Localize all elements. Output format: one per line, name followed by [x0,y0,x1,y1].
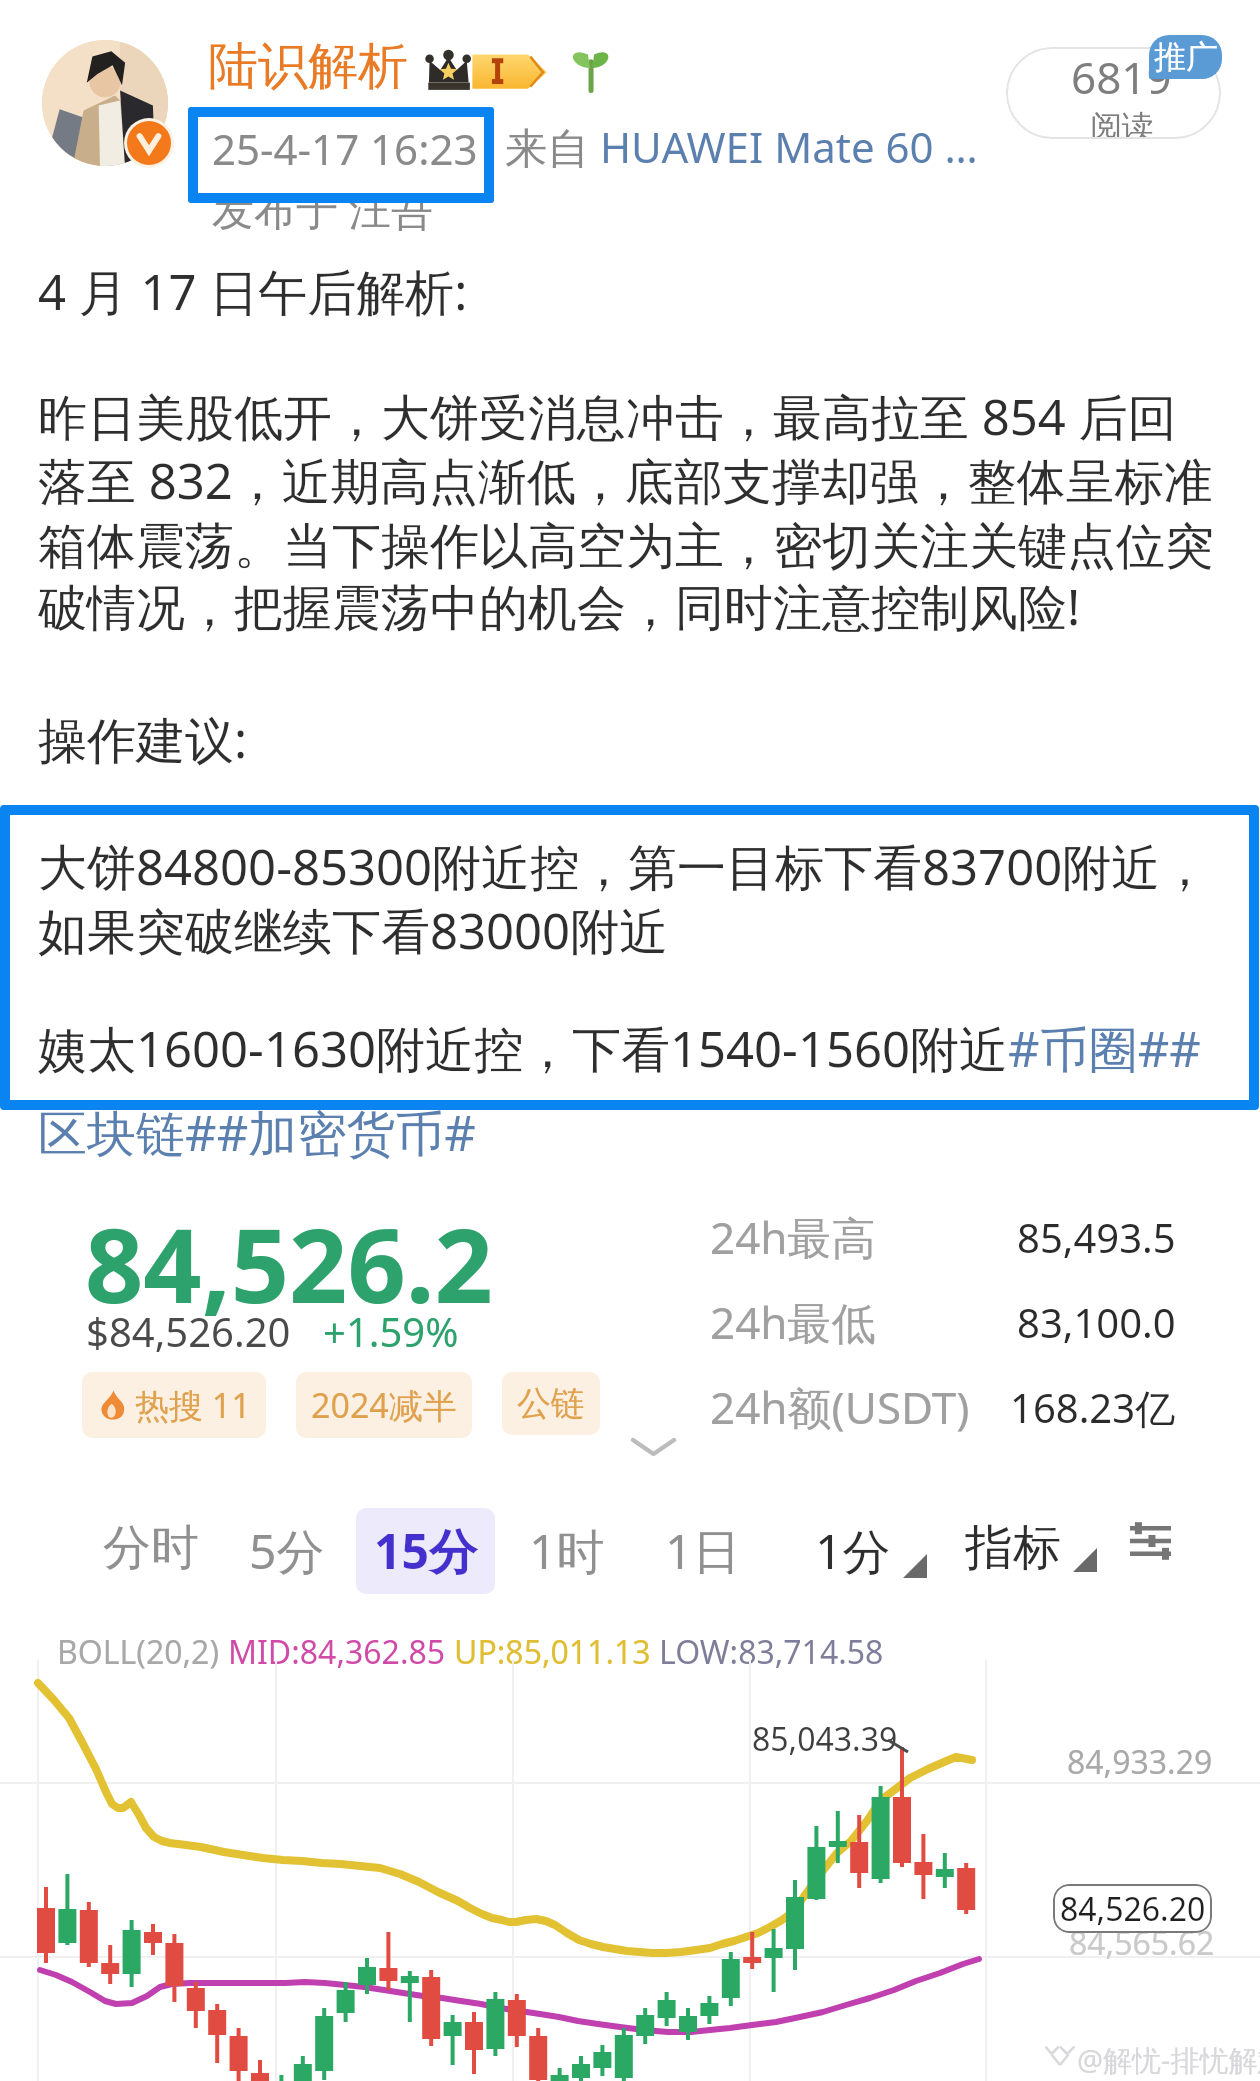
button[interactable]: 2024减半 [311,1382,457,1428]
staticText: 2024减半 [311,1382,457,1428]
staticText: 84,526.20 [1060,1887,1206,1931]
staticText: 15分 [374,1518,477,1584]
staticText: 如果突破继续下看83000附近 [38,897,669,964]
staticText: 姨太1600-1630附近控，下看1540-1560附近#币圈## [38,1015,1201,1082]
staticText: 箱体震荡。当下操作以高空为主，密切关注关键点位突 [38,516,1214,578]
staticText: 6819 [1071,47,1172,107]
staticText: 推广 [1154,37,1218,77]
other: Verified [127,121,171,165]
button[interactable]: 公链 [517,1382,585,1425]
staticText: 阅读 [1090,107,1154,139]
staticText: 1时 [529,1518,605,1584]
staticText: 发布于 汪吾 [212,180,433,237]
staticText: UP:85,011.13 [454,1630,659,1674]
staticText: 昨日美股低开，大饼受消息冲击，最高拉至 854 后回 [38,383,1177,450]
staticText: LOW:83,714.58 [659,1630,884,1674]
staticText: 陆识解析 [208,35,408,98]
staticText: HUAWEI Mate 60 … [600,118,978,175]
button[interactable]: 5分 [249,1518,325,1584]
staticText: 1日 [665,1518,741,1584]
staticText: 落至 832，近期高点渐低，底部支撑却强，整体呈标准 [38,447,1213,514]
button[interactable]: 1日 [665,1518,741,1584]
staticText: 区块链##加密货币# [38,1099,476,1166]
staticText: 84,565.62 [1069,1921,1215,1965]
staticText: 84,526.2 [85,1194,493,1333]
staticText: 85,043.39 [752,1717,898,1761]
staticText: 大饼84800-85300附近控，第一目标下看83700附近， [38,833,1210,900]
staticText: 热搜 11 [135,1382,251,1428]
button[interactable]: 1分 [815,1518,927,1584]
staticText: 破情况，把握震荡中的机会，同时注意控制风险! [38,573,1081,640]
button[interactable]: Avatar [42,40,168,166]
staticText: 24h最高 [710,1207,876,1267]
button[interactable]: 15分 [374,1518,477,1584]
staticText: 25-4-17 16:23 [212,120,478,177]
staticText: 84,933.29 [1067,1740,1213,1784]
staticText: 来自 [505,118,600,175]
button[interactable]: 1时 [529,1518,605,1584]
staticText: 分时 [103,1518,199,1578]
staticText: 5分 [249,1518,325,1584]
staticText: @解忧-排忧解难 [1077,2040,1260,2080]
staticText: 85,493.5 [1017,1210,1176,1264]
staticText: MID:84,362.85 [228,1630,454,1674]
staticText: 指标 [965,1518,1061,1578]
staticText: BOLL(20,2) [57,1630,228,1674]
button[interactable]: 指标 [965,1518,1097,1578]
button[interactable]: 热搜 11 [97,1382,251,1428]
staticText: 公链 [517,1382,585,1425]
staticText: 操作建议: [38,706,248,773]
staticText: 4 月 17 日午后解析: [38,258,468,325]
button[interactable]: 分时 [103,1518,199,1578]
staticText: 24h额(USDT) [710,1377,970,1437]
staticText: 25-4-17 16:23 [212,120,478,177]
staticText: 168.23亿 [1010,1380,1176,1435]
staticText: +1.59% [323,1304,459,1358]
button[interactable]: Chart settings [1122,1518,1178,1564]
staticText: $84,526.20 [86,1304,291,1358]
button[interactable]: 陆识解析 [208,35,616,98]
staticText: 83,100.0 [1017,1295,1176,1349]
staticText: 24h最低 [710,1292,876,1352]
button[interactable]: Expand [620,1426,686,1468]
staticText: 1分 [815,1518,891,1584]
button[interactable]: 6819 [1006,47,1221,139]
